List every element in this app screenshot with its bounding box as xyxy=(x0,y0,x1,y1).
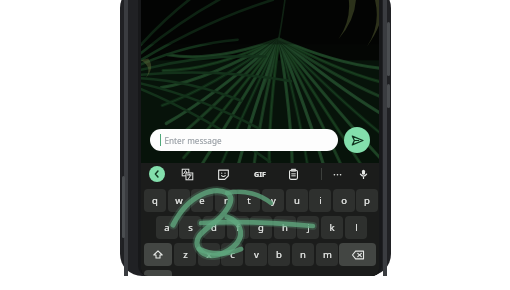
button[interactable]: g xyxy=(250,216,272,239)
button[interactable]: u xyxy=(286,189,308,212)
button[interactable]: Stickers xyxy=(215,166,231,182)
staticText: r xyxy=(224,194,228,207)
staticText: d xyxy=(211,221,217,234)
button[interactable]: c xyxy=(221,243,243,266)
button[interactable]: h xyxy=(274,216,296,239)
button[interactable]: o xyxy=(333,189,355,212)
staticText: o xyxy=(341,194,347,207)
button[interactable]: m xyxy=(316,243,338,266)
staticText: c xyxy=(230,248,235,261)
staticText: l xyxy=(355,221,358,234)
staticText: p xyxy=(364,194,370,207)
staticText: b xyxy=(276,248,282,261)
staticText: h xyxy=(282,221,288,234)
staticText: z xyxy=(183,248,188,261)
button[interactable]: n xyxy=(292,243,314,266)
staticText: a xyxy=(164,221,170,234)
staticText: m xyxy=(323,248,332,261)
button[interactable]: q xyxy=(144,189,166,212)
staticText: j xyxy=(307,221,310,234)
staticText: e xyxy=(199,194,205,207)
staticText: k xyxy=(329,221,335,234)
button[interactable]: l xyxy=(345,216,367,239)
staticText: g xyxy=(258,221,264,234)
button[interactable]: w xyxy=(168,189,190,212)
staticText: t xyxy=(247,194,251,207)
staticText: q xyxy=(152,194,158,207)
button[interactable]: Enter message xyxy=(150,129,338,151)
button[interactable]: More options xyxy=(329,166,345,182)
button[interactable]: t xyxy=(238,189,260,212)
staticText: n xyxy=(300,248,306,261)
button[interactable]: GIF xyxy=(251,166,267,182)
button[interactable]: Back xyxy=(149,166,165,182)
button[interactable]: Clipboard xyxy=(285,166,301,182)
button[interactable]: Voice input xyxy=(355,166,371,182)
button[interactable]: d xyxy=(203,216,225,239)
button[interactable]: r xyxy=(215,189,237,212)
staticText: s xyxy=(188,221,193,234)
button[interactable]: Shift xyxy=(144,243,172,266)
staticText: x xyxy=(206,248,212,261)
staticText: GIF xyxy=(254,169,266,179)
button[interactable]: Send xyxy=(344,127,370,153)
button[interactable]: x xyxy=(198,243,220,266)
button[interactable]: f xyxy=(227,216,249,239)
button[interactable]: b xyxy=(268,243,290,266)
button[interactable]: z xyxy=(174,243,196,266)
staticText: y xyxy=(271,194,276,207)
button[interactable]: e xyxy=(191,189,213,212)
button[interactable]: ?123 xyxy=(144,270,172,276)
staticText: w xyxy=(175,194,183,207)
staticText: f xyxy=(236,221,240,234)
button[interactable]: k xyxy=(321,216,343,239)
button[interactable]: Translate xyxy=(179,166,195,182)
staticText: u xyxy=(294,194,300,207)
button[interactable]: y xyxy=(262,189,284,212)
staticText: i xyxy=(319,194,322,207)
button[interactable]: s xyxy=(179,216,201,239)
button[interactable]: GIF xyxy=(252,166,268,182)
button[interactable]: j xyxy=(297,216,319,239)
button[interactable]: v xyxy=(245,243,267,266)
button[interactable]: i xyxy=(309,189,331,212)
button[interactable]: Backspace xyxy=(339,243,376,266)
staticText: v xyxy=(254,248,259,261)
staticText: Enter message xyxy=(164,135,222,146)
button[interactable]: a xyxy=(156,216,178,239)
button[interactable]: p xyxy=(356,189,378,212)
